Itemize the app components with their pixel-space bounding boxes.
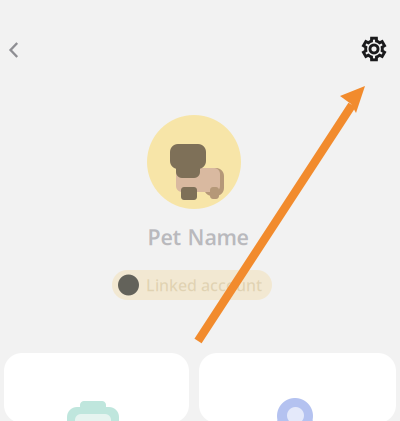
button[interactable]: Settings [356,31,392,67]
staticText: Linked account [146,274,262,296]
button[interactable] [199,353,396,421]
button[interactable]: Back [0,33,31,67]
button[interactable] [4,353,189,421]
button[interactable]: Linked account [112,270,272,300]
staticText: Pet Name [147,223,248,251]
